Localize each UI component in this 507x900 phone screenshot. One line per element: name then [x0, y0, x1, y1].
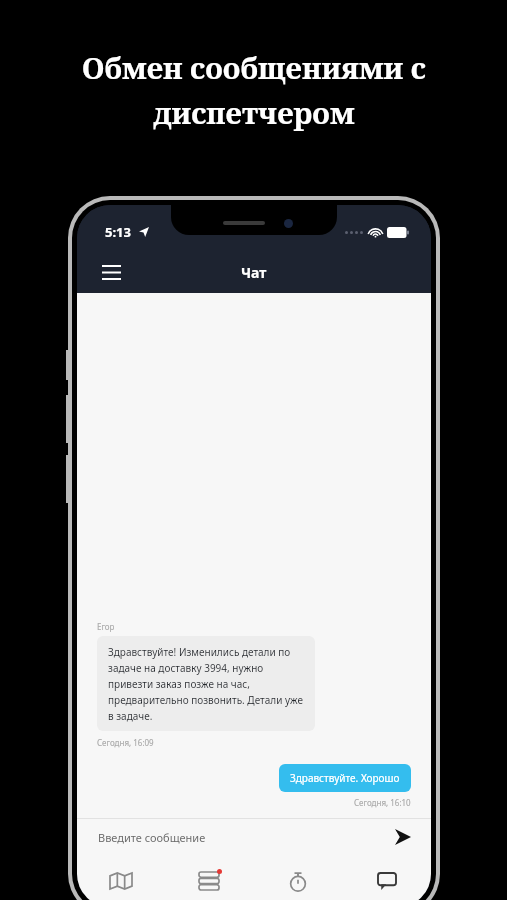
staticText: Здравствуйте. Хорошо — [290, 771, 400, 785]
staticText: Сегодня, 16:09 — [97, 737, 154, 748]
staticText: Чат — [241, 263, 267, 282]
button[interactable]: Введите сообщение — [77, 819, 431, 855]
button[interactable]: Menu — [93, 254, 129, 290]
button[interactable]: Chat — [342, 855, 431, 900]
button[interactable]: Здравствуйте. Хорошо — [279, 764, 411, 792]
staticText: 5:13 — [105, 223, 131, 241]
staticText: Егор — [97, 621, 115, 632]
staticText: Введите сообщение — [98, 830, 206, 845]
staticText: диспетчером — [153, 93, 355, 132]
staticText: Обмен сообщениями с — [82, 48, 426, 87]
staticText: Сегодня, 16:10 — [354, 797, 411, 808]
staticText: Здравствуйте! Изменились детали по задач… — [108, 645, 304, 722]
button[interactable]: Map — [77, 855, 165, 900]
button[interactable]: Timer — [253, 855, 342, 900]
button[interactable]: Tasks — [165, 855, 253, 900]
button[interactable]: Здравствуйте! Изменились детали по задач… — [97, 636, 315, 731]
button[interactable]: Send — [389, 823, 417, 851]
